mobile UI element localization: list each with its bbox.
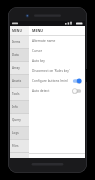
button[interactable]: MENU bbox=[10, 26, 29, 35]
button[interactable]: Items bbox=[10, 36, 29, 48]
button[interactable]: MENU bbox=[29, 26, 85, 35]
staticText: Tools bbox=[12, 92, 20, 96]
staticText: Array bbox=[12, 66, 20, 70]
staticText: Auto key bbox=[32, 59, 45, 63]
staticText: MENU bbox=[32, 28, 44, 33]
staticText: Query bbox=[12, 118, 21, 122]
staticText: Info bbox=[12, 105, 18, 109]
staticText: Assets bbox=[12, 79, 22, 83]
button[interactable]: Info bbox=[10, 101, 29, 113]
button[interactable]: Data bbox=[10, 49, 29, 61]
staticText: Configure buttons (min) bbox=[32, 79, 68, 83]
staticText: Logs bbox=[12, 131, 19, 135]
button[interactable]: Logs bbox=[10, 127, 29, 139]
button[interactable]: Query bbox=[10, 114, 29, 126]
staticText: Auto detect bbox=[32, 89, 50, 93]
button[interactable]: Auto detect bbox=[29, 86, 85, 96]
button[interactable]: Alternate name bbox=[29, 36, 85, 46]
button[interactable]: Auto key bbox=[29, 56, 85, 66]
button[interactable]: Tools bbox=[10, 88, 29, 100]
button[interactable]: Cursor bbox=[29, 46, 85, 56]
staticText: Alternate name bbox=[32, 39, 56, 43]
button[interactable]: Configure buttons (min) bbox=[29, 76, 85, 86]
button[interactable]: Assets bbox=[10, 75, 29, 87]
button[interactable]: Files bbox=[10, 140, 29, 152]
staticText: Data bbox=[12, 53, 19, 57]
staticText: Cursor bbox=[32, 49, 43, 53]
staticText: Items bbox=[12, 40, 21, 44]
button[interactable]: Disconnect on 'Rules key' bbox=[29, 66, 85, 76]
button[interactable]: Array bbox=[10, 62, 29, 74]
staticText: MENU bbox=[12, 29, 22, 33]
button[interactable]: Toggle off bbox=[72, 88, 82, 94]
staticText: Files bbox=[12, 144, 19, 148]
staticText: Disconnect on 'Rules key' bbox=[32, 69, 70, 73]
button[interactable]: Toggle on bbox=[72, 78, 82, 84]
